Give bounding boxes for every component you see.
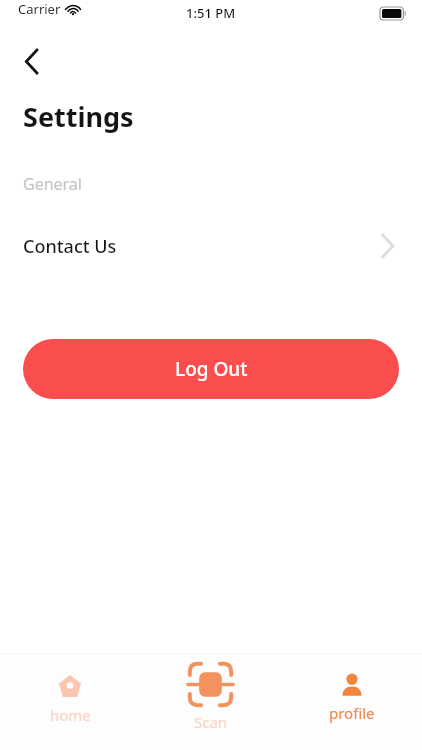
button[interactable]: home (0, 653, 140, 750)
button[interactable]: Scan (140, 653, 281, 750)
staticText: Settings (23, 98, 134, 135)
staticText: General (23, 173, 82, 195)
staticText: 1:51 PM (186, 4, 236, 22)
button[interactable]: Contact Us (0, 225, 422, 267)
staticText: Log Out (175, 356, 248, 382)
button[interactable]: Back (10, 40, 52, 82)
button[interactable]: profile (281, 653, 422, 750)
staticText: home (50, 705, 91, 725)
staticText: Contact Us (23, 234, 117, 259)
staticText: profile (329, 703, 375, 723)
staticText: Scan (194, 712, 228, 732)
staticText: Carrier (18, 0, 61, 18)
button[interactable]: Log Out (23, 339, 399, 399)
